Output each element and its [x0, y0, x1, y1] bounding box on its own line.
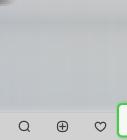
button[interactable]: New post: [43, 112, 81, 140]
button[interactable]: Search: [5, 112, 43, 140]
button[interactable]: Activity: [81, 112, 119, 140]
